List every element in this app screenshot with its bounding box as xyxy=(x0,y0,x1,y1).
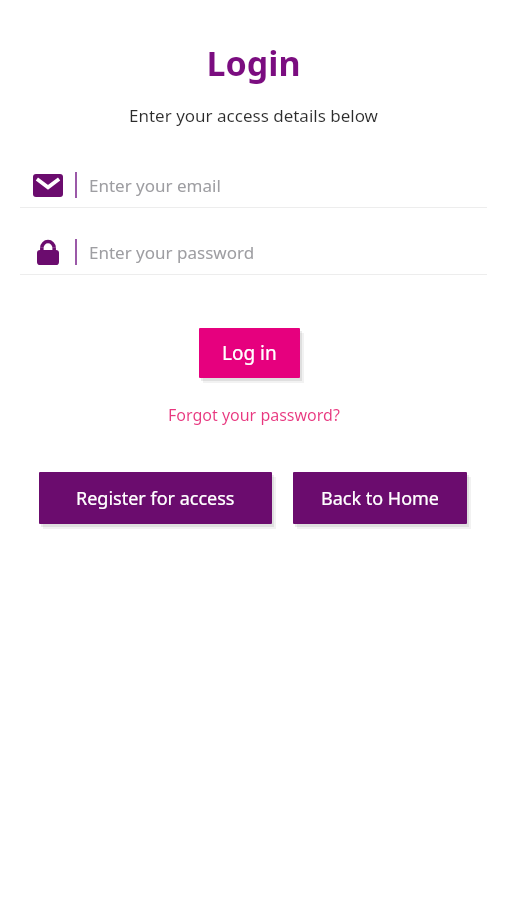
other: Email xyxy=(33,170,63,200)
button[interactable]: Password xyxy=(0,230,507,274)
staticText: Back to Home xyxy=(321,486,440,511)
button[interactable]: Email xyxy=(0,163,507,207)
button[interactable]: Forgot your password? xyxy=(162,401,346,429)
button[interactable]: Back to Home xyxy=(293,472,467,524)
staticText: Enter your email xyxy=(89,174,221,197)
staticText: Login xyxy=(0,40,507,86)
staticText: Enter your password xyxy=(89,241,255,264)
other: Password xyxy=(33,237,63,267)
staticText: Log in xyxy=(222,340,277,366)
button[interactable]: Register for access xyxy=(39,472,272,524)
staticText: Forgot your password? xyxy=(168,404,340,426)
staticText: Register for access xyxy=(76,486,235,511)
staticText: Enter your access details below xyxy=(0,104,507,127)
button[interactable]: Log in xyxy=(199,328,300,378)
